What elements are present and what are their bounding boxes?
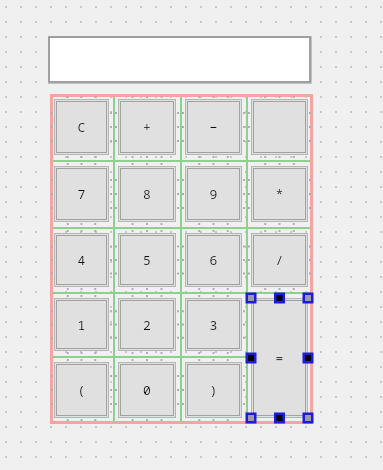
button[interactable]: 7	[54, 166, 109, 222]
button[interactable]: Minus	[185, 99, 242, 155]
button[interactable]: Blank button	[251, 99, 308, 155]
button[interactable]: Divide	[251, 233, 308, 287]
button[interactable]: 1	[54, 298, 109, 351]
button[interactable]: Multiply	[251, 166, 308, 222]
button[interactable]: 0	[118, 362, 176, 418]
button[interactable]: 2	[118, 298, 176, 351]
button[interactable]: 3	[185, 298, 242, 351]
button[interactable]: Clear	[54, 99, 109, 155]
button[interactable]: Close parenthesis	[185, 362, 242, 418]
button[interactable]: Plus	[118, 99, 176, 155]
button[interactable]: Open parenthesis	[54, 362, 109, 418]
button[interactable]: 8	[118, 166, 176, 222]
button[interactable]: 9	[185, 166, 242, 222]
button[interactable]: 6	[185, 233, 242, 287]
button[interactable]: Equals	[251, 298, 308, 418]
button[interactable]: 5	[118, 233, 176, 287]
button[interactable]: 4	[54, 233, 109, 287]
button[interactable]: Expression display	[48, 36, 312, 84]
